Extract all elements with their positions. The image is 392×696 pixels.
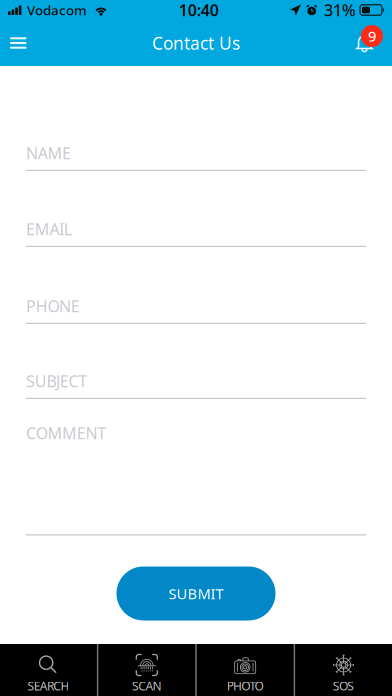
- button[interactable]: SUBMIT: [116, 566, 275, 620]
- button[interactable]: SOS: [295, 644, 392, 696]
- staticText: SOS: [333, 678, 354, 694]
- staticText: SUBJECT: [26, 370, 87, 392]
- staticText: 10:40: [179, 0, 219, 21]
- staticText: SCAN: [132, 678, 162, 694]
- button[interactable]: EMAIL: [26, 221, 366, 247]
- button[interactable]: SEARCH: [0, 644, 97, 696]
- button[interactable]: Notifications: [354, 20, 392, 66]
- staticText: PHOTO: [227, 678, 264, 694]
- button[interactable]: NAME: [26, 145, 366, 171]
- staticText: NAME: [26, 142, 71, 164]
- staticText: Vodacom: [27, 1, 87, 19]
- staticText: Contact Us: [152, 31, 240, 54]
- button[interactable]: COMMENT: [26, 425, 366, 535]
- staticText: COMMENT: [26, 422, 106, 444]
- staticText: 9: [368, 26, 376, 46]
- staticText: PHONE: [26, 295, 80, 317]
- button[interactable]: SUBJECT: [26, 373, 366, 399]
- staticText: SUBMIT: [168, 584, 223, 603]
- staticText: SEARCH: [27, 678, 69, 694]
- button[interactable]: Menu: [0, 20, 36, 66]
- button[interactable]: PHONE: [26, 298, 366, 324]
- staticText: 31%: [324, 0, 356, 21]
- button[interactable]: SCAN: [98, 644, 195, 696]
- staticText: EMAIL: [26, 218, 72, 240]
- button[interactable]: PHOTO: [197, 644, 294, 696]
